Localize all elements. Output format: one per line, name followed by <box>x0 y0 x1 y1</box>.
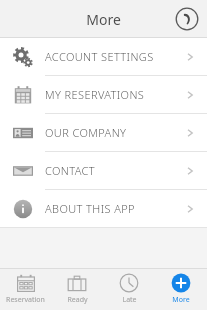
button[interactable]: MY RESERVATIONS <box>0 76 207 113</box>
staticText: ABOUT THIS APP <box>45 201 185 216</box>
button[interactable]: Ready <box>51 269 103 310</box>
staticText: ACCOUNT SETTINGS <box>45 49 185 64</box>
staticText: OUR COMPANY <box>45 125 185 140</box>
button[interactable]: ACCOUNT SETTINGS <box>0 38 207 75</box>
button[interactable]: ABOUT THIS APP <box>0 190 207 227</box>
staticText: Late <box>122 295 137 305</box>
button[interactable]: CONTACT <box>0 152 207 189</box>
button[interactable]: Late <box>103 269 155 310</box>
staticText: CONTACT <box>45 163 185 178</box>
button[interactable]: More <box>155 269 207 310</box>
staticText: Ready <box>67 295 88 305</box>
staticText: MY RESERVATIONS <box>45 87 185 102</box>
button[interactable]: Reservation <box>0 269 51 310</box>
staticText: More <box>172 295 190 305</box>
button[interactable]: OUR COMPANY <box>0 114 207 151</box>
staticText: More <box>86 10 121 29</box>
staticText: Reservation <box>6 295 45 305</box>
button[interactable]: Call <box>174 6 200 32</box>
